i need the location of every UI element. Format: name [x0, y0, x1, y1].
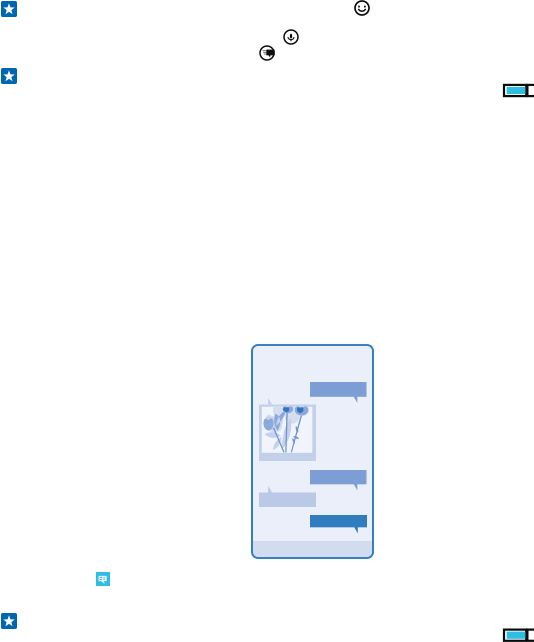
- button[interactable]: Messaging: [96, 572, 110, 586]
- button[interactable]: Tip: [1, 613, 17, 629]
- button[interactable]: Tip: [1, 1, 17, 17]
- button[interactable]: Tip: [1, 68, 17, 84]
